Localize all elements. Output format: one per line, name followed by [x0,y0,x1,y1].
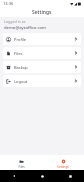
staticText: Logged in as [4,19,26,24]
button[interactable]: Settings [42,157,84,169]
staticText: Profile [14,37,27,42]
staticText: Logout [14,79,28,84]
staticText: Files [14,51,23,56]
staticText: demo@xyzoffice.com [4,25,46,31]
button[interactable]: Logout [3,75,81,87]
button[interactable]: Profile [3,33,81,45]
button[interactable]: Home [28,175,56,178]
button[interactable]: Files [3,47,81,59]
button[interactable]: Files [0,157,42,169]
button[interactable]: Backup [3,61,81,73]
button[interactable]: Back [0,174,28,178]
staticText: 13:36 [3,1,14,6]
staticText: Files [18,165,25,169]
staticText: Settings [57,165,69,169]
staticText: Backup [14,65,28,70]
button[interactable]: Recents [56,175,84,178]
staticText: Settings [32,9,52,16]
